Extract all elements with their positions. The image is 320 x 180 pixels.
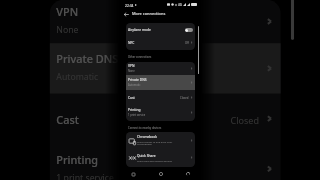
button[interactable]: Airplane mode [185, 28, 193, 32]
staticText: Airplane mode [128, 28, 151, 32]
staticText: Private DNS [128, 78, 147, 82]
staticText: More connections [132, 11, 166, 16]
staticText: 1 print service [128, 113, 146, 117]
button[interactable]: Recent apps [119, 168, 147, 180]
staticText: Cast [56, 114, 80, 127]
staticText: VPN [128, 64, 135, 68]
button[interactable]: NFC [126, 36, 195, 49]
staticText: 4G [178, 3, 182, 7]
button[interactable]: Printing [50, 144, 281, 180]
staticText: Other connections [128, 55, 152, 59]
button[interactable]: Home [147, 168, 174, 180]
staticText: Off [185, 41, 189, 45]
staticText: Quick Share [137, 154, 156, 158]
button[interactable]: Navigate up [122, 10, 130, 18]
button[interactable]: Quick Share [126, 149, 195, 166]
button[interactable]: Private DNS [126, 75, 195, 90]
staticText: Chromebook [137, 135, 158, 139]
button[interactable]: VPN [126, 62, 195, 75]
staticText: Send content to and from your Chromebook [137, 140, 173, 146]
button[interactable]: VPN [50, 0, 281, 43]
button[interactable]: Airplane mode [126, 23, 195, 36]
staticText: 1 print service [56, 171, 117, 180]
staticText: Closed [180, 96, 189, 100]
button[interactable]: Chromebook [126, 132, 195, 149]
staticText: Cast [128, 96, 135, 100]
button[interactable]: Cast [50, 93, 281, 144]
staticText: Connect to nearby devices [128, 126, 162, 130]
staticText: None [128, 69, 135, 73]
staticText: 22:34 [125, 3, 134, 7]
staticText: VPN [56, 6, 80, 20]
staticText: Printing [56, 154, 100, 167]
staticText: NFC [128, 41, 135, 45]
button[interactable]: Private DNS [50, 43, 281, 94]
staticText: Share files with nearby devices [137, 159, 173, 162]
staticText: None [56, 23, 80, 37]
button[interactable]: Cast [126, 90, 195, 105]
staticText: Private DNS [56, 53, 120, 67]
staticText: Automatic [128, 83, 141, 87]
staticText: Closed [230, 114, 261, 127]
button[interactable]: Back [174, 168, 201, 180]
staticText: Printing [128, 108, 141, 112]
button[interactable]: Printing [126, 105, 195, 120]
staticText: Automatic [56, 70, 100, 83]
